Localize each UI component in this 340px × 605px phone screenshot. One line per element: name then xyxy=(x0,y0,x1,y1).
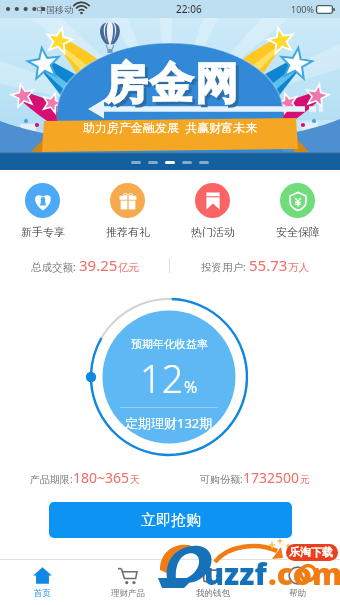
staticText: 亿元 xyxy=(118,261,139,274)
staticText: 55.73 xyxy=(249,255,288,275)
staticText: 12 xyxy=(140,352,184,404)
button[interactable]: 立即抢购 xyxy=(49,502,292,538)
staticText: 立即抢购 xyxy=(141,511,201,530)
button[interactable]: 推荐有礼 xyxy=(85,183,170,239)
button[interactable]: 帮助 xyxy=(255,560,340,605)
staticText: 180~365 xyxy=(73,468,130,487)
staticText: 预期年化收益率 xyxy=(131,337,208,351)
staticText: 投资用户: xyxy=(201,260,249,274)
staticText: 房金网 xyxy=(104,57,241,111)
staticText: 产品期限: xyxy=(30,472,73,486)
staticText: 房金网 xyxy=(107,60,244,114)
staticText: 定期理财132期 xyxy=(125,414,213,432)
staticText: 元 xyxy=(300,473,310,486)
staticText: 安全保障 xyxy=(276,225,320,239)
button[interactable]: 热门活动 xyxy=(170,183,255,239)
staticText: 100% xyxy=(291,3,314,15)
other: 热门活动 xyxy=(203,191,223,211)
staticText: 22:06 xyxy=(176,2,202,16)
staticText: % xyxy=(184,376,198,398)
staticText: 乐淘下载 xyxy=(289,545,333,559)
other: 安全保障 xyxy=(288,191,308,211)
staticText: 我的钱包 xyxy=(196,588,230,599)
staticText: 理财产品 xyxy=(111,588,145,599)
other: 推荐有礼 xyxy=(118,191,138,211)
button[interactable]: 我的钱包 xyxy=(170,560,255,605)
staticText: 可购份额: xyxy=(200,472,243,486)
staticText: 助力房产金融发展 共赢财富未来 xyxy=(83,119,258,135)
staticText: 天 xyxy=(130,473,140,486)
staticText: uzzf xyxy=(204,553,267,594)
button[interactable]: 新手专享 xyxy=(0,183,85,239)
staticText: 1732500 xyxy=(243,468,300,487)
staticText: 推荐有礼 xyxy=(106,225,150,239)
staticText: .com xyxy=(268,553,340,594)
staticText: 热门活动 xyxy=(191,225,235,239)
staticText: 39.25 xyxy=(79,255,118,275)
other: 新手专享 xyxy=(33,191,53,211)
button[interactable]: 首页 xyxy=(0,560,85,605)
staticText: 新手专享 xyxy=(21,225,65,239)
staticText: 万人 xyxy=(288,261,309,274)
button[interactable]: 安全保障 xyxy=(255,183,340,239)
staticText: 总成交额: xyxy=(31,260,79,274)
staticText: 中国移动 xyxy=(37,4,73,15)
staticText: 帮助 xyxy=(289,588,306,599)
button[interactable]: 理财产品 xyxy=(85,560,170,605)
staticText: 首页 xyxy=(34,588,51,599)
